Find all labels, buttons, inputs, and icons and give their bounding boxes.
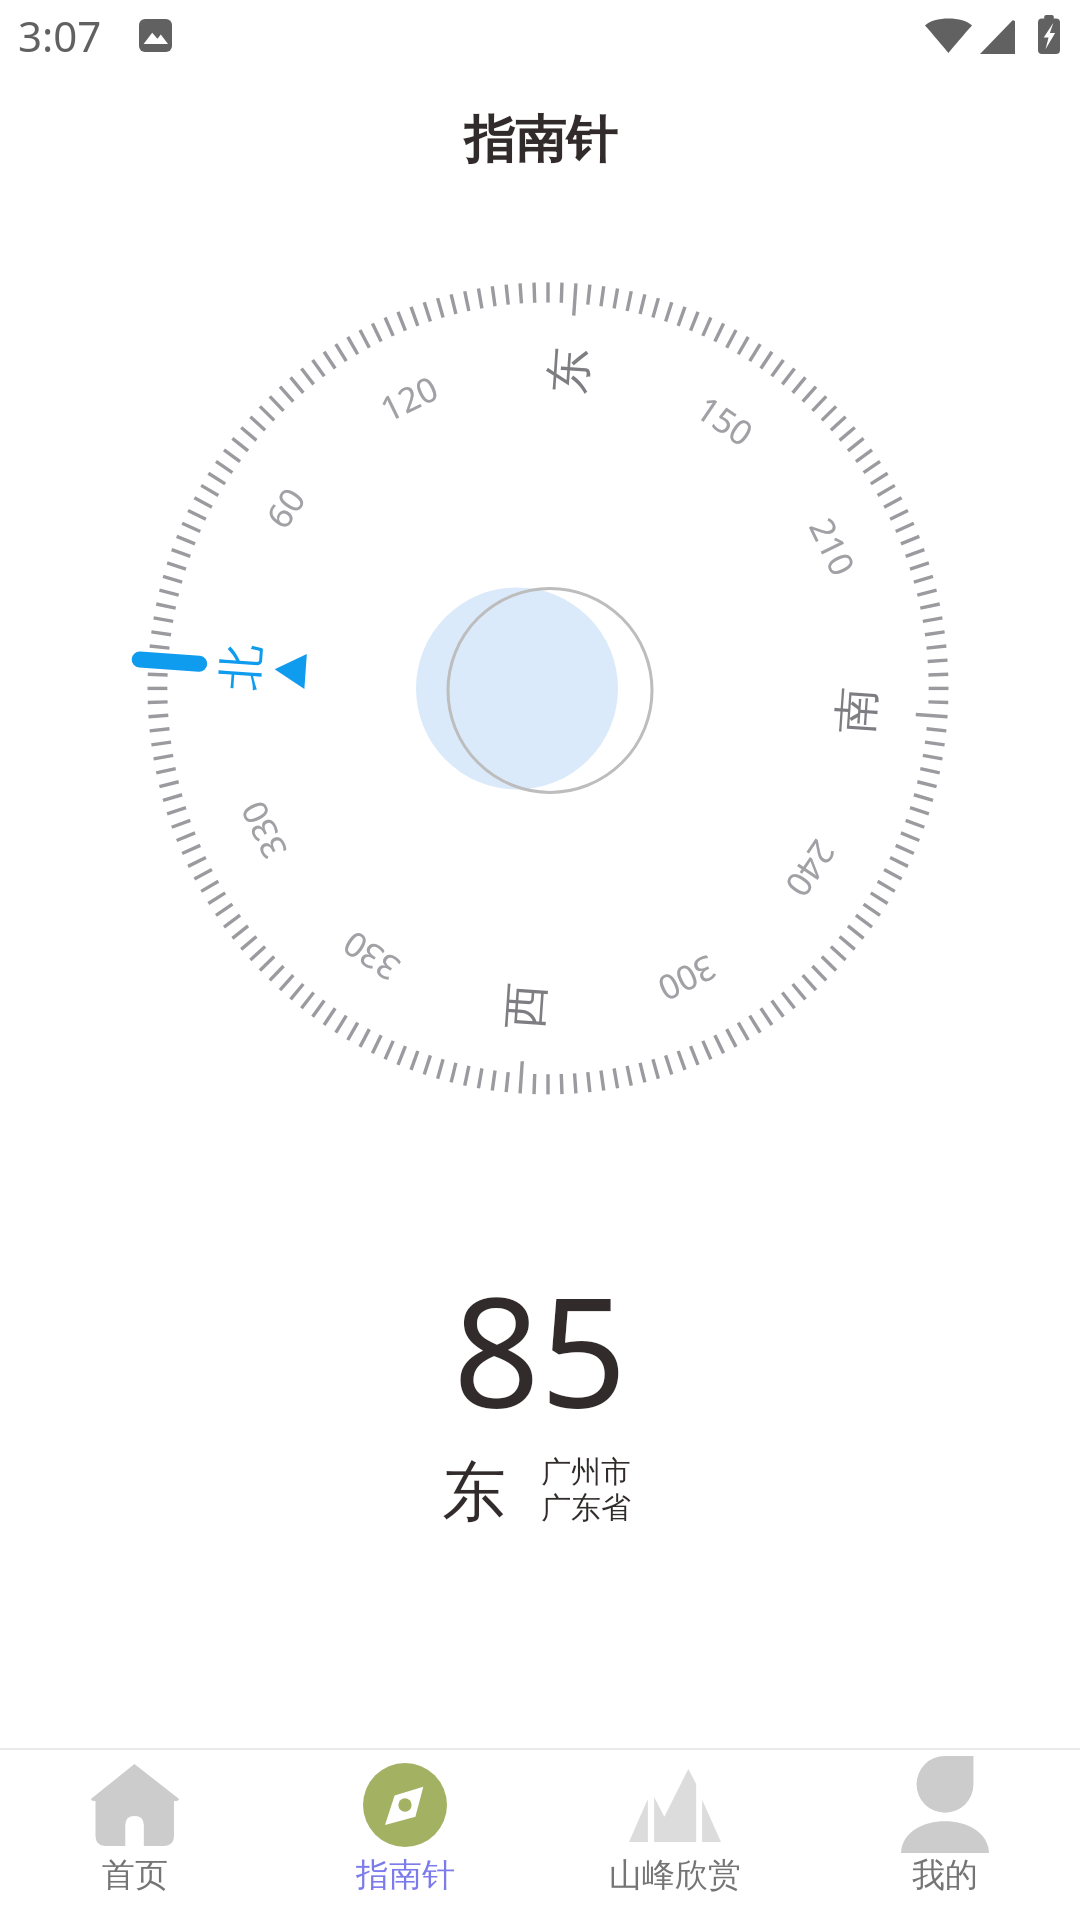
staticText: 首页 xyxy=(102,1854,168,1896)
button[interactable]: 首页 xyxy=(0,1750,270,1920)
staticText: 山峰欣赏 xyxy=(609,1854,741,1896)
other: Screenshot xyxy=(139,19,172,52)
other: Signal strength xyxy=(980,20,1015,54)
staticText: 指南针 xyxy=(356,1854,455,1896)
button[interactable]: 指南针 xyxy=(270,1750,540,1920)
staticText: 广州市 广东省 xyxy=(541,1453,631,1527)
staticText: 85 xyxy=(453,1245,627,1452)
button[interactable]: 我的 xyxy=(810,1750,1080,1920)
button[interactable]: 山峰欣赏 xyxy=(540,1750,810,1920)
staticText: 指南针 xyxy=(464,108,617,172)
staticText: 东 xyxy=(442,1452,506,1533)
other: Battery xyxy=(1038,15,1060,54)
other: Wi-Fi xyxy=(925,16,972,53)
staticText: 我的 xyxy=(912,1854,978,1896)
staticText: 3:07 xyxy=(18,7,102,64)
